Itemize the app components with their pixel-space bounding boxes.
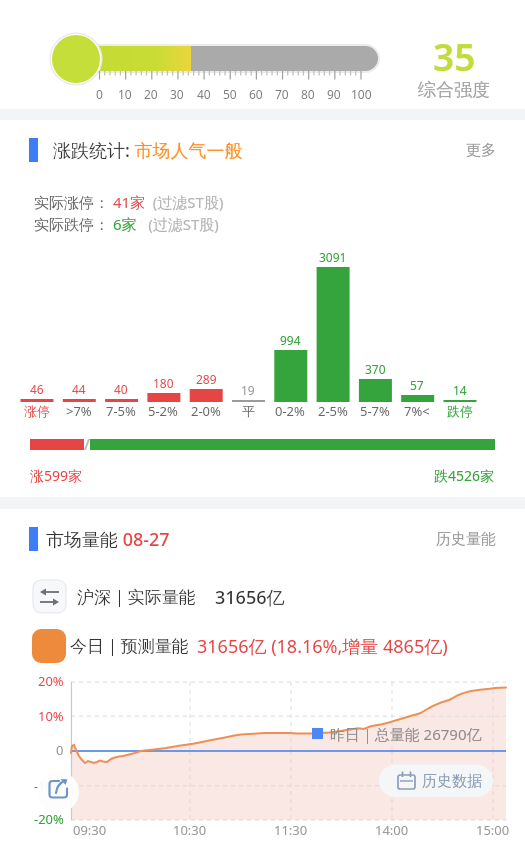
staticText: 涨跌统计: 市场人气一般 xyxy=(53,138,243,163)
staticText: 90 xyxy=(327,86,341,102)
staticText: 3091 xyxy=(319,249,347,265)
staticText: 5-2% xyxy=(148,402,178,420)
staticText: 涨599家 xyxy=(30,466,83,485)
staticText: 昨日｜总量能 26790亿 xyxy=(330,724,482,744)
staticText: 30 xyxy=(170,86,184,102)
staticText: 跌4526家 xyxy=(434,466,495,485)
staticText: 289 xyxy=(196,371,217,387)
staticText: 0-2% xyxy=(275,402,305,420)
staticText: 180 xyxy=(153,375,174,391)
button[interactable]: 历史量能 xyxy=(236,517,496,561)
staticText: 更多 xyxy=(466,141,496,160)
staticText: -10% xyxy=(34,777,64,795)
staticText: 0 xyxy=(96,86,103,102)
staticText: 19 xyxy=(241,382,255,398)
staticText: 370 xyxy=(365,361,386,377)
staticText: 15:00 xyxy=(476,821,510,839)
staticText: 平 xyxy=(242,403,255,419)
staticText: 14:00 xyxy=(375,821,409,839)
staticText: 09:30 xyxy=(73,821,107,839)
staticText: 20 xyxy=(144,86,158,102)
staticText: 2-5% xyxy=(318,402,348,420)
staticText: 沪深｜实际量能 xyxy=(77,587,196,608)
staticText: 44 xyxy=(72,381,86,397)
staticText: 综合强度 xyxy=(418,79,490,102)
staticText: 今日｜预测量能 xyxy=(70,636,189,657)
staticText: >7% xyxy=(66,402,92,420)
button[interactable] xyxy=(37,771,79,813)
staticText: 0 xyxy=(56,741,64,759)
staticText: 市场量能 08-27 xyxy=(46,527,170,552)
staticText: 实际跌停： 6家 (过滤ST股) xyxy=(34,214,219,234)
staticText: 57 xyxy=(410,377,424,393)
staticText: 实际涨停： 41家 (过滤ST股) xyxy=(34,192,224,212)
staticText: 涨停 xyxy=(24,403,50,419)
staticText: 5-7% xyxy=(360,402,390,420)
staticText: 40 xyxy=(114,381,128,397)
staticText: 20% xyxy=(38,672,64,690)
staticText: 31656亿 (18.16%,增量 4865亿) xyxy=(197,634,448,659)
staticText: 46 xyxy=(30,381,44,397)
staticText: 7%< xyxy=(404,402,430,420)
staticText: 10 xyxy=(118,86,132,102)
button[interactable]: 沪深｜实际量能 xyxy=(77,575,525,619)
staticText: 35 xyxy=(433,31,476,75)
staticText: 70 xyxy=(275,86,289,102)
staticText: 10% xyxy=(38,707,64,725)
staticText: 11:30 xyxy=(274,821,308,839)
staticText: 2-0% xyxy=(191,402,221,420)
button[interactable]: 更多 xyxy=(236,128,496,172)
staticText: 10:30 xyxy=(173,821,207,839)
staticText: 历史量能 xyxy=(436,530,496,549)
button[interactable] xyxy=(379,764,493,797)
staticText: 100 xyxy=(351,86,372,102)
staticText: 历史数据 xyxy=(422,772,482,791)
staticText: 994 xyxy=(280,332,301,348)
staticText: 80 xyxy=(301,86,315,102)
staticText: 31656亿 xyxy=(215,585,285,610)
staticText: 40 xyxy=(197,86,211,102)
staticText: 14 xyxy=(453,382,467,398)
staticText: 50 xyxy=(223,86,237,102)
staticText: 跌停 xyxy=(447,403,473,419)
staticText: 60 xyxy=(249,86,263,102)
staticText: -20% xyxy=(34,810,64,828)
staticText: 7-5% xyxy=(106,402,136,420)
